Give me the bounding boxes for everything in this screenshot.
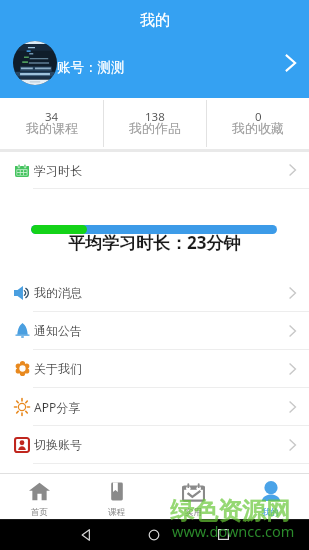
button[interactable]: 通知公告 [0,312,309,349]
other: Back [80,529,92,541]
button[interactable]: 关于我们 [0,350,309,387]
staticText: 我的作品 [129,120,181,136]
button[interactable]: 0 [207,107,309,141]
staticText: 绿色资源网 [170,496,290,526]
other: Recents [218,529,229,540]
staticText: 138 [145,109,165,125]
staticText: 学习时长 [34,163,82,178]
button[interactable]: 实用 [155,474,232,518]
staticText: 课程 [108,507,125,518]
staticText: 通知公告 [34,323,82,338]
button[interactable]: 我的 [232,474,309,518]
staticText: 0 [255,109,262,125]
staticText: 我的 [140,11,170,30]
staticText: 关于我们 [34,361,82,376]
other: Account detail [285,54,296,72]
staticText: 账号：测测 [57,59,125,76]
button[interactable]: 34 [0,107,103,141]
button[interactable]: 课程 [78,474,155,518]
staticText: 我的 [262,507,279,518]
staticText: 34 [45,109,59,125]
staticText: 平均学习时长：23分钟 [68,231,241,254]
button[interactable]: APP分享 [0,388,309,425]
staticText: 实用 [185,507,202,518]
button[interactable]: 账号：测测 [0,37,309,89]
staticText: www.downcc.com [172,521,295,541]
button[interactable]: 138 [104,107,206,141]
staticText: 首页 [31,507,48,518]
staticText: 我的消息 [34,285,82,300]
staticText: APP分享 [34,399,81,415]
button[interactable]: 切换账号 [0,426,309,463]
button[interactable]: 首页 [0,474,78,518]
button[interactable]: 我的消息 [0,274,309,311]
other: Home [148,529,160,541]
staticText: 我的收藏 [232,120,284,136]
staticText: 切换账号 [34,437,82,452]
staticText: 我的课程 [26,120,78,136]
button[interactable]: 学习时长 [0,152,309,188]
